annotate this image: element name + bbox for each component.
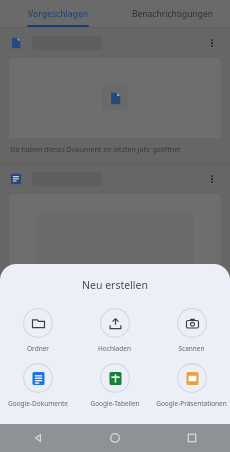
button[interactable]: Ordner (0, 308, 76, 353)
button[interactable]: Hochladen (76, 308, 153, 353)
staticText: Ordner (27, 344, 49, 353)
button[interactable]: More options (0, 28, 230, 163)
button[interactable]: More options (204, 171, 220, 187)
button[interactable]: Benachrichtigungen (115, 0, 230, 27)
button[interactable]: Home (76, 424, 153, 452)
staticText: Google-Dokumente (8, 399, 68, 408)
staticText: Vorgeschlagen (28, 8, 89, 20)
button[interactable]: Vorgeschlagen (0, 0, 115, 27)
staticText: Benachrichtigungen (132, 8, 213, 20)
staticText: Google-Präsentationen (156, 399, 227, 408)
staticText: Google-Tabellen (90, 399, 140, 408)
button[interactable]: More options (204, 35, 220, 51)
staticText: Scannen (178, 344, 205, 353)
button[interactable]: More options (0, 164, 230, 274)
button[interactable]: Google-Dokumente (0, 363, 76, 408)
button[interactable]: Google-Präsentationen (153, 363, 230, 408)
staticText: Neu erstellen (0, 278, 230, 292)
button[interactable]: Back (0, 424, 76, 452)
button[interactable]: Recent apps (153, 424, 230, 452)
button[interactable]: Scannen (153, 308, 230, 353)
staticText: Hochladen (98, 344, 131, 353)
staticText: Sie haben dieses Dokument im letzten Jah… (10, 145, 181, 155)
button[interactable]: Google-Tabellen (76, 363, 153, 408)
